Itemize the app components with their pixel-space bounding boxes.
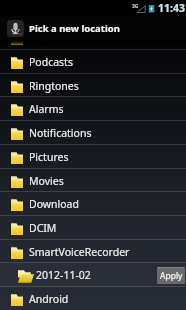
button[interactable]: Apply	[157, 267, 185, 284]
button[interactable]: Music	[0, 25, 186, 49]
button[interactable]: Download	[0, 192, 186, 216]
button[interactable]: Voice recorder app icon	[7, 20, 24, 37]
staticText: Android	[29, 292, 186, 306]
button[interactable]: Android	[0, 287, 186, 310]
staticText: DCIM	[29, 221, 186, 235]
button[interactable]: DCIM	[0, 216, 186, 240]
button[interactable]: Alarms	[0, 97, 186, 121]
button[interactable]: Podcasts	[0, 50, 186, 74]
button[interactable]: 2012-11-02	[0, 263, 186, 287]
staticText: Movies	[29, 174, 186, 188]
staticText: Notifications	[29, 126, 186, 140]
staticText: SmartVoiceRecorder	[29, 245, 186, 259]
button[interactable]: Ringtones	[0, 74, 186, 98]
staticText: 3G	[132, 3, 139, 10]
button[interactable]: Pictures	[0, 145, 186, 169]
staticText: Pictures	[29, 150, 186, 164]
staticText: Pick a new location	[29, 22, 120, 35]
button[interactable]: SmartVoiceRecorder	[0, 240, 186, 264]
staticText: Download	[29, 197, 186, 211]
staticText: Podcasts	[29, 55, 186, 69]
staticText: Music	[29, 30, 57, 44]
button[interactable]: Movies	[0, 169, 186, 193]
staticText: Ringtones	[29, 79, 186, 93]
staticText: 11:43	[158, 1, 185, 15]
staticText: Alarms	[29, 102, 186, 116]
button[interactable]: Notifications	[0, 121, 186, 145]
staticText: Apply	[160, 270, 183, 282]
staticText: 2012-11-02	[36, 268, 157, 282]
